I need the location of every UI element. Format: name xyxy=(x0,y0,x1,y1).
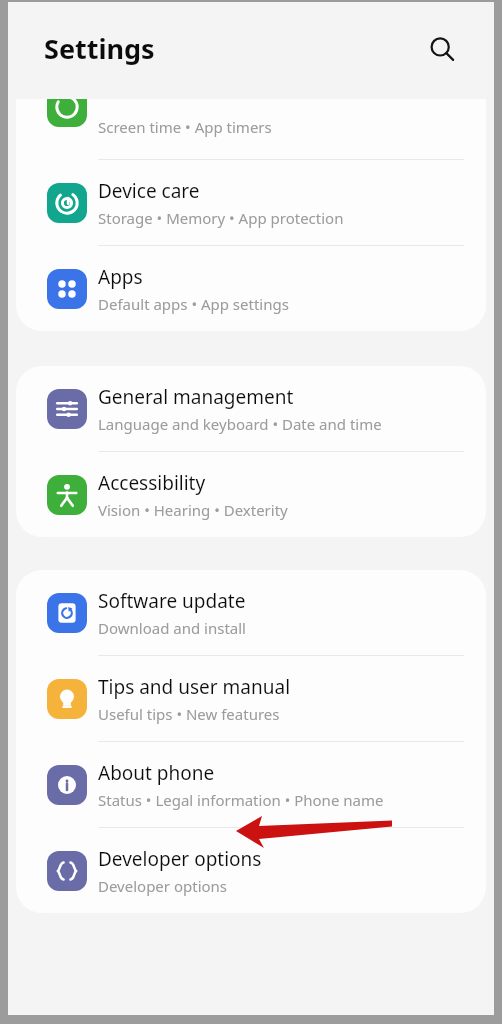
staticText: Tips and user manual xyxy=(98,674,291,700)
button[interactable]: Accessibility xyxy=(16,452,486,537)
staticText: Settings xyxy=(44,30,155,67)
staticText: Default apps • App settings xyxy=(98,294,289,314)
staticText: Useful tips • New features xyxy=(98,704,280,724)
staticText: Software update xyxy=(98,588,246,614)
staticText: Language and keyboard • Date and time xyxy=(98,414,382,434)
button[interactable]: About phone xyxy=(16,742,486,827)
button[interactable]: Apps xyxy=(16,246,486,331)
staticText: General management xyxy=(98,384,294,410)
button[interactable]: Screen time • App timers xyxy=(16,99,486,159)
button[interactable]: Search xyxy=(420,27,464,71)
button[interactable]: General management xyxy=(16,366,486,451)
staticText: Status • Legal information • Phone name xyxy=(98,790,384,810)
button[interactable]: Tips and user manual xyxy=(16,656,486,741)
button[interactable]: Developer options xyxy=(16,828,486,913)
staticText: Storage • Memory • App protection xyxy=(98,208,344,228)
button[interactable]: Device care xyxy=(16,160,486,245)
staticText: Vision • Hearing • Dexterity xyxy=(98,500,288,520)
button[interactable]: Software update xyxy=(16,570,486,655)
staticText: Download and install xyxy=(98,618,246,638)
staticText: Developer options xyxy=(98,846,262,872)
staticText: About phone xyxy=(98,760,215,786)
staticText: Screen time • App timers xyxy=(98,117,272,137)
staticText: Device care xyxy=(98,178,200,204)
staticText: Accessibility xyxy=(98,470,206,496)
staticText: Apps xyxy=(98,264,143,290)
staticText: Developer options xyxy=(98,876,228,896)
